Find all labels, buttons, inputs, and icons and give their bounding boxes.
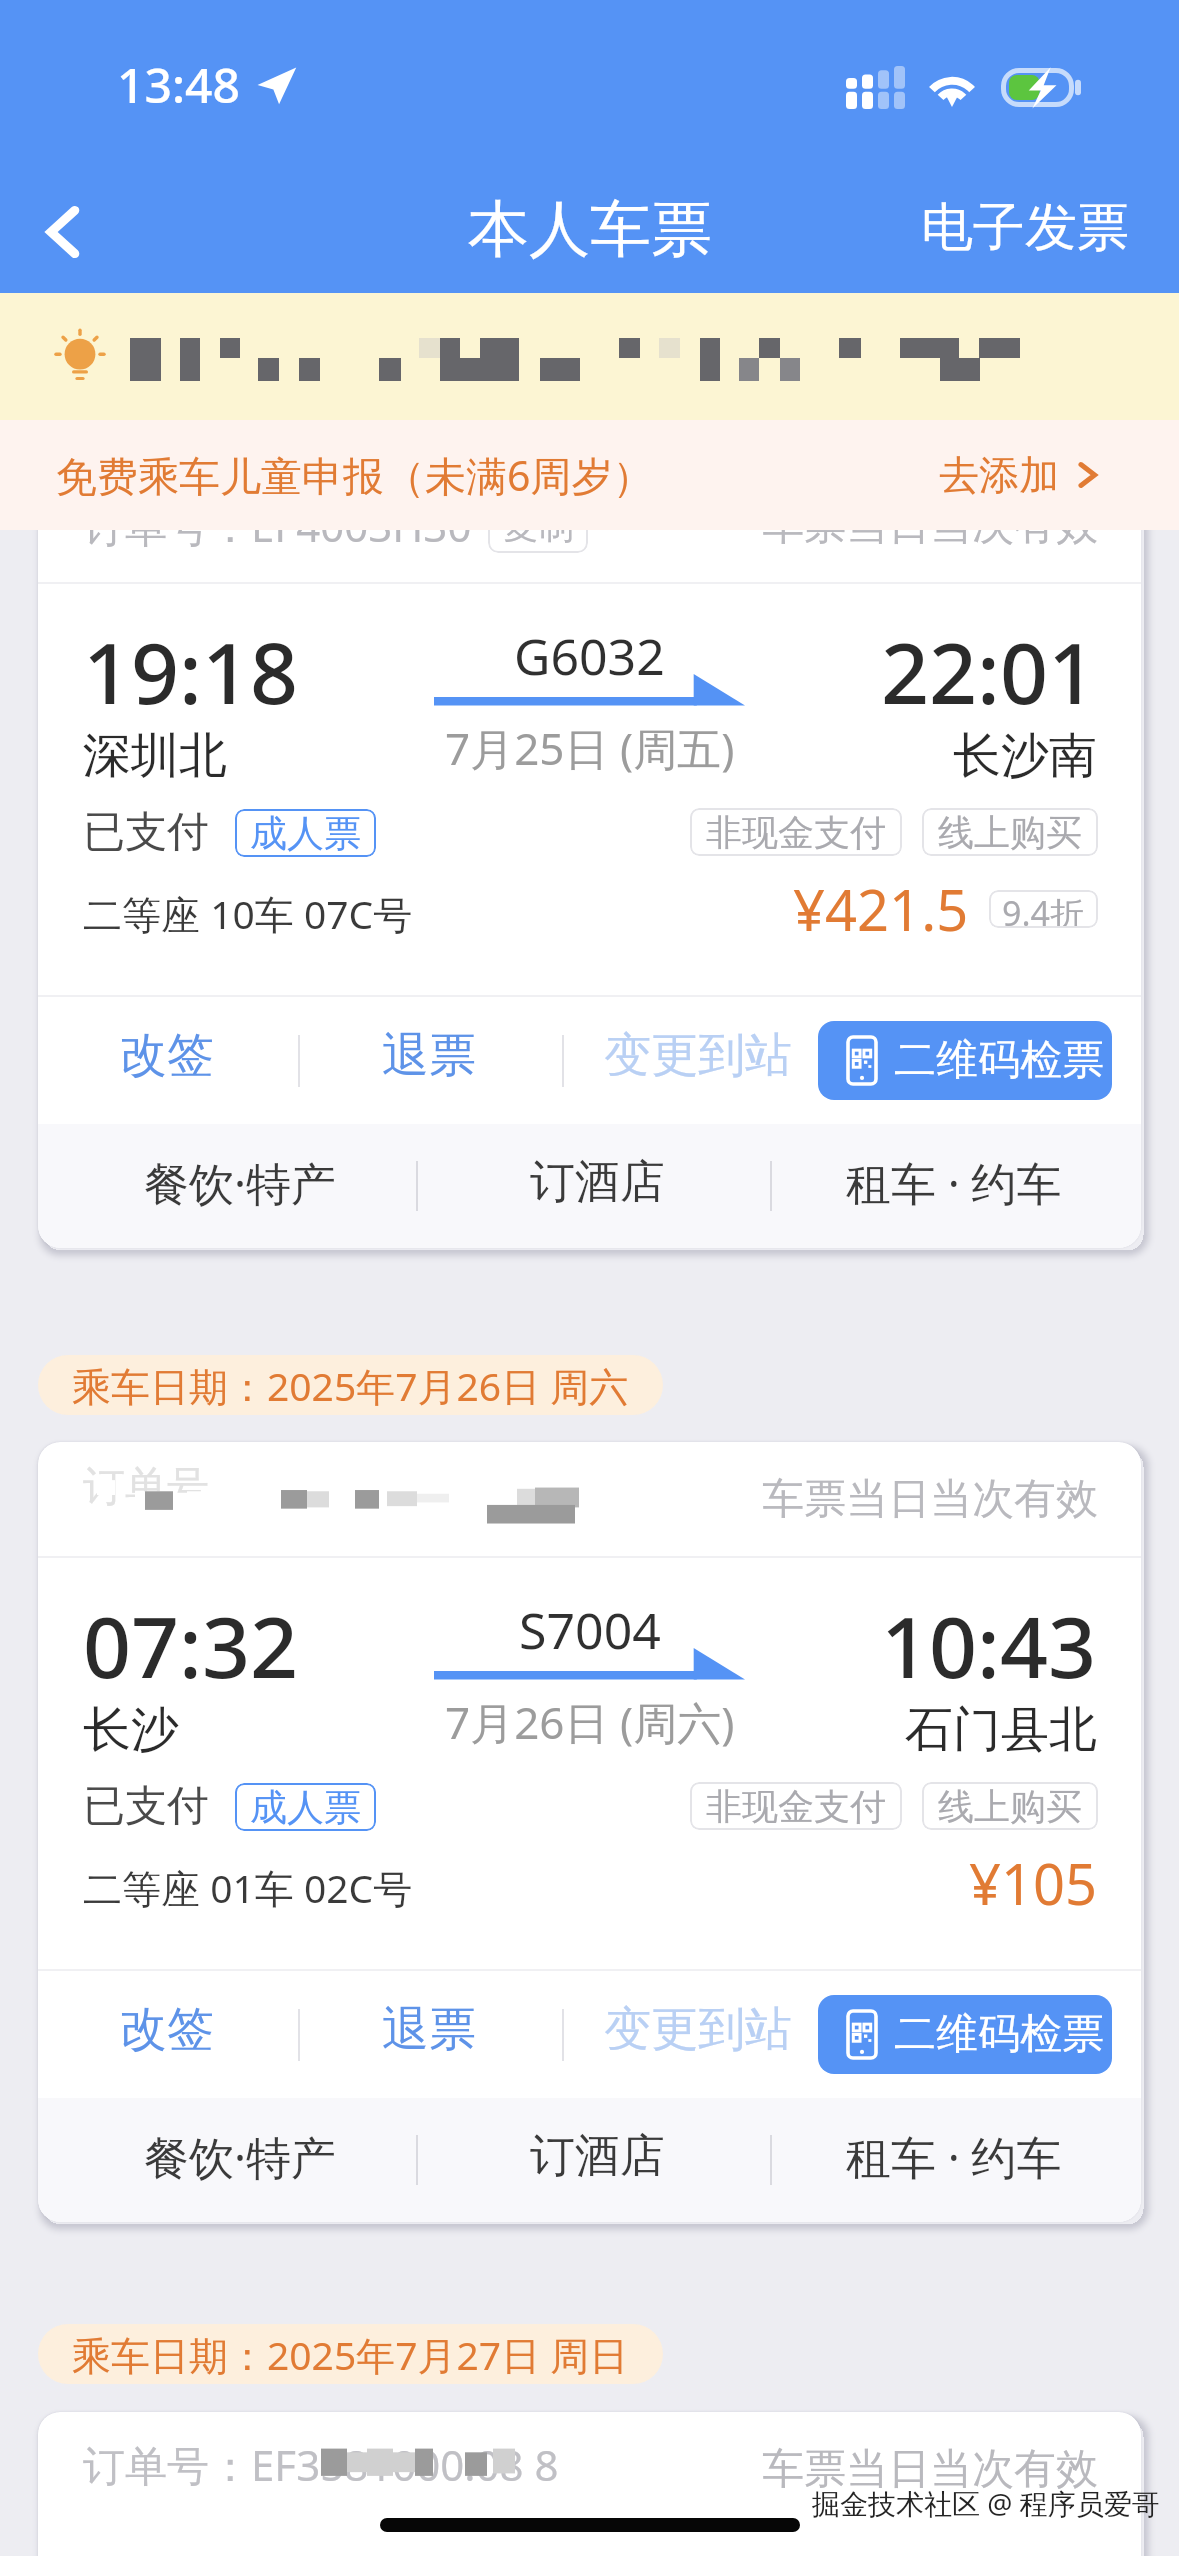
staticText: 改签	[120, 1026, 214, 1085]
staticText: ¥421.5	[793, 871, 969, 947]
button[interactable]: 订酒店	[518, 2104, 677, 2209]
staticText: 石门县北	[905, 1700, 1097, 1760]
staticText: 线上购买	[938, 1784, 1082, 1829]
staticText: 订单号：EF4003H30	[83, 497, 472, 554]
button[interactable]: 改签	[96, 1976, 238, 2083]
staticText: 订酒店	[530, 1154, 665, 1211]
staticText: 二维码检票	[894, 1034, 1104, 1087]
staticText: 电子发票	[921, 195, 1129, 261]
staticText: 变更到站	[604, 1026, 792, 1085]
button[interactable]: 餐饮·特产	[132, 1128, 349, 1237]
staticText: 二等座 01车 02C号	[83, 1861, 413, 1914]
button[interactable]: 退票	[358, 1002, 500, 1109]
staticText: 车票当日当次有效	[762, 499, 1098, 552]
staticText: 成人票	[250, 810, 361, 857]
staticText: 复制	[502, 503, 574, 548]
staticText: 二维码检票	[894, 2008, 1104, 2061]
button[interactable]: 变更到站	[580, 1002, 816, 1109]
staticText: 线上购买	[938, 810, 1082, 855]
staticText: G6032	[514, 622, 665, 690]
button[interactable]: 餐饮·特产	[132, 2102, 349, 2211]
staticText: 二等座 10车 07C号	[83, 887, 413, 940]
staticText: 租车 · 约车	[846, 2126, 1062, 2187]
staticText: 订酒店	[530, 2128, 665, 2185]
staticText: 退票	[382, 1026, 476, 1085]
staticText: 车票当日当次有效	[762, 1473, 1098, 1526]
staticText: 去添加	[939, 450, 1059, 500]
staticText: 07:32	[83, 1588, 299, 1702]
button[interactable]: 变更到站	[580, 1976, 816, 2083]
button[interactable]: Back	[18, 186, 110, 278]
staticText: 成人票	[250, 1784, 361, 1831]
staticText: 免费乘车儿童申报（未满6周岁）	[56, 447, 654, 503]
staticText: ¥105	[969, 1845, 1098, 1921]
staticText: 已支付	[83, 806, 209, 859]
staticText: 7月26日 (周六)	[445, 1692, 735, 1752]
staticText: 掘金技术社区 @ 程序员爱哥	[812, 2484, 1160, 2522]
staticText: 22:01	[881, 614, 1097, 728]
button[interactable]: 退票	[358, 1976, 500, 2083]
staticText: S7004	[519, 1596, 661, 1664]
staticText: 租车 · 约车	[846, 1152, 1062, 1213]
staticText: 长沙南	[953, 726, 1097, 786]
staticText: 10:43	[881, 1588, 1097, 1702]
staticText: 7月25日 (周五)	[445, 718, 735, 778]
staticText: 已支付	[83, 1780, 209, 1833]
staticText: 本人车票	[468, 191, 712, 268]
button[interactable]: 二维码检票	[818, 1021, 1112, 1100]
button[interactable]: 二维码检票	[818, 1995, 1112, 2074]
staticText: 改签	[120, 2000, 214, 2059]
staticText: 退票	[382, 2000, 476, 2059]
staticText: 长沙	[83, 1700, 179, 1760]
staticText: 订单号：EF3581000.08 8	[83, 2436, 559, 2493]
staticText: 乘车日期：2025年7月27日 周日	[72, 2328, 629, 2381]
button[interactable]: 订酒店	[518, 1130, 677, 1235]
button[interactable]: 复制	[488, 498, 588, 553]
button[interactable]: 免费乘车儿童申报（未满6周岁）	[0, 420, 1179, 530]
staticText: 19:18	[83, 614, 299, 728]
button[interactable]: 改签	[96, 1002, 238, 1109]
staticText: 13:48	[117, 52, 240, 117]
staticText: 餐饮·特产	[144, 1152, 337, 1213]
staticText: 车票当日当次有效	[762, 2443, 1098, 2496]
staticText: 非现金支付	[706, 810, 886, 855]
staticText: 变更到站	[604, 2000, 792, 2059]
staticText: 餐饮·特产	[144, 2126, 337, 2187]
staticText: 订单号	[83, 1461, 209, 1514]
staticText: 深圳北	[83, 726, 227, 786]
button[interactable]: 电子发票	[875, 179, 1179, 277]
button[interactable]: 租车 · 约车	[834, 2102, 1074, 2211]
staticText: 9.4折	[1002, 890, 1085, 928]
staticText: 非现金支付	[706, 1784, 886, 1829]
staticText: 乘车日期：2025年7月26日 周六	[72, 1359, 629, 1412]
button[interactable]: 租车 · 约车	[834, 1128, 1074, 1237]
